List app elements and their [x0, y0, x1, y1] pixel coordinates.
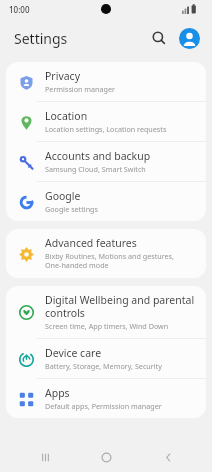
- staticText: Google: [45, 189, 81, 203]
- button[interactable]: Accounts and backup: [6, 142, 206, 181]
- staticText: 10:00: [9, 4, 30, 15]
- button[interactable]: Advanced features: [6, 229, 206, 278]
- staticText: Default apps, Permission manager: [45, 401, 162, 411]
- button[interactable]: Google: [6, 182, 206, 221]
- staticText: Google settings: [45, 204, 98, 214]
- staticText: Screen time, App timers, Wind Down: [45, 321, 169, 331]
- staticText: Device care: [45, 346, 102, 360]
- button[interactable]: Apps: [6, 379, 206, 418]
- button[interactable]: Location: [6, 102, 206, 141]
- staticText: Settings: [14, 29, 68, 48]
- button[interactable]: Search: [146, 25, 172, 51]
- staticText: Location: [45, 109, 88, 123]
- button[interactable]: Recents: [28, 442, 62, 472]
- staticText: Samsung Cloud, Smart Switch: [45, 164, 146, 174]
- staticText: Battery, Storage, Memory, Security: [45, 361, 162, 371]
- button[interactable]: Home: [89, 442, 123, 472]
- button[interactable]: Back: [151, 442, 185, 472]
- staticText: Privacy: [45, 69, 81, 83]
- staticText: Accounts and backup: [45, 149, 151, 163]
- staticText: Bixby Routines, Motions and gestures, On…: [45, 251, 174, 271]
- staticText: Location settings, Location requests: [45, 124, 167, 134]
- staticText: Permission manager: [45, 84, 116, 94]
- button[interactable]: Privacy: [6, 62, 206, 101]
- staticText: Apps: [45, 386, 70, 400]
- button[interactable]: Digital Wellbeing and parental controls: [6, 286, 206, 338]
- staticText: Digital Wellbeing and parental controls: [45, 293, 195, 320]
- button[interactable]: Device care: [6, 339, 206, 378]
- staticText: Advanced features: [45, 236, 137, 250]
- button[interactable]: Account: [176, 25, 202, 51]
